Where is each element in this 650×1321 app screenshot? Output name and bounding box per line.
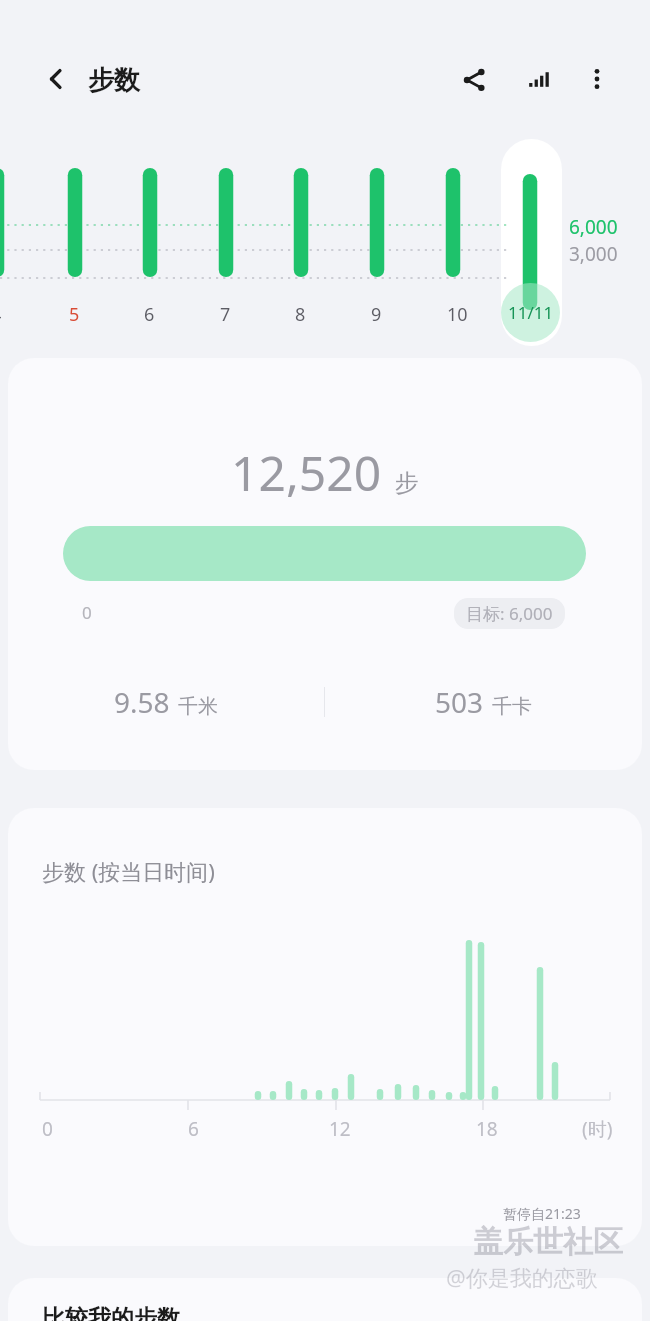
staticText: 6 [144,302,155,327]
staticText: 目标: 6,000 [466,602,553,625]
staticText: 步 [395,468,419,498]
staticText: 比较我的步数 [42,1304,180,1321]
button[interactable]: 503 [325,683,642,721]
staticText: 步数 [88,64,140,97]
staticText: 0 [82,601,92,624]
button[interactable] [501,139,562,346]
staticText: 千米 [178,694,218,719]
staticText: 11/11 [508,301,554,324]
staticText: 步数 (按当日时间) [42,856,215,886]
staticText: (时) [582,1116,613,1142]
staticText: 5 [69,302,80,327]
staticText: 9 [371,302,382,327]
staticText: 12 [329,1116,351,1142]
staticText: 3,000 [569,241,618,267]
button[interactable]: Back [30,53,82,105]
staticText: 0 [42,1116,53,1142]
staticText: 7 [220,302,231,327]
button[interactable]: Share [449,55,497,103]
button[interactable]: More options [573,55,621,103]
staticText: 18 [476,1116,498,1142]
staticText: 千卡 [492,694,532,719]
staticText: 4 [0,302,2,327]
staticText: 12,520 [231,440,382,505]
staticText: 6 [188,1116,199,1142]
staticText: 10 [447,302,468,327]
staticText: 盖乐世社区 [473,1223,623,1261]
staticText: @你是我的恋歌 [446,1262,598,1292]
staticText: 8 [295,302,306,327]
staticText: 9.58 [114,683,170,721]
button[interactable]: Chart view [514,55,562,103]
staticText: 503 [435,683,484,721]
staticText: 6,000 [569,214,618,240]
staticText: 暂停自21:23 [503,1204,581,1223]
button[interactable]: 9.58 [8,683,324,721]
